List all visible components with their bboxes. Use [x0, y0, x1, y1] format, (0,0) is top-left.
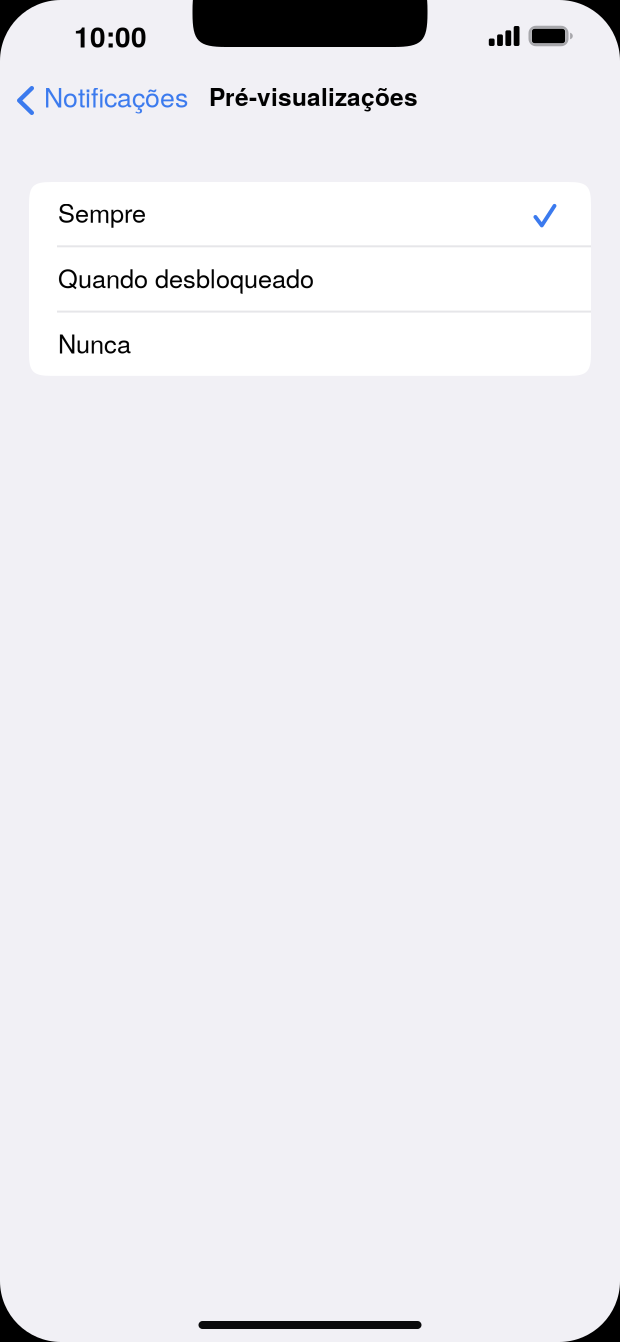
staticText: Notificações — [44, 77, 188, 115]
button[interactable]: Sempre — [29, 182, 591, 245]
button[interactable]: Quando desbloqueado — [29, 247, 591, 311]
staticText: Quando desbloqueado — [58, 259, 314, 295]
staticText: Nunca — [58, 324, 131, 361]
staticText: Sempre — [58, 194, 146, 230]
button[interactable]: Nunca — [29, 313, 591, 376]
button[interactable]: Notificações — [0, 67, 188, 125]
staticText: 10:00 — [74, 16, 147, 56]
staticText: Pré-visualizações — [209, 78, 418, 113]
